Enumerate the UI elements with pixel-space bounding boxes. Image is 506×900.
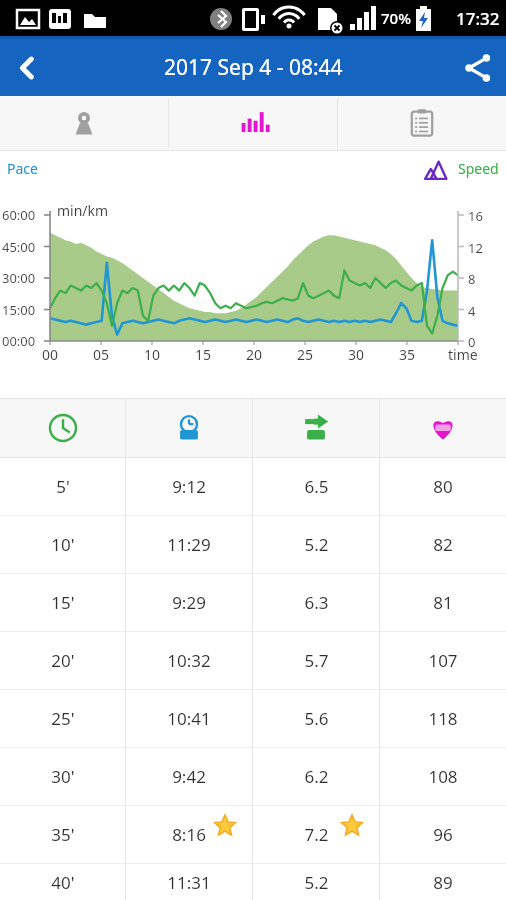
staticText: 30:00: [2, 269, 36, 287]
staticText: 15': [51, 591, 75, 614]
button[interactable]: 15': [0, 574, 506, 631]
staticText: 5': [56, 475, 70, 498]
button[interactable]: 35': [0, 806, 506, 863]
staticText: 11:31: [167, 871, 211, 894]
staticText: 8:16: [172, 823, 206, 846]
staticText: 25': [51, 707, 75, 730]
staticText: min/km: [57, 201, 109, 220]
staticText: 9:12: [172, 475, 206, 498]
staticText: 05: [93, 345, 110, 364]
staticText: 5.2: [304, 871, 329, 894]
staticText: 60:00: [2, 206, 36, 224]
button[interactable]: Duration: [0, 399, 125, 457]
staticText: 80: [433, 475, 453, 498]
staticText: time: [448, 345, 478, 364]
staticText: 70%: [381, 8, 411, 28]
staticText: 30: [348, 345, 365, 364]
button[interactable]: 30': [0, 748, 506, 805]
button[interactable]: Average pace: [126, 399, 252, 457]
staticText: 5.2: [304, 533, 329, 556]
button[interactable]: Map: [0, 96, 168, 150]
staticText: 45:00: [2, 238, 36, 256]
staticText: 16: [468, 207, 483, 225]
button[interactable]: Details: [338, 96, 506, 150]
staticText: 25: [297, 345, 314, 364]
staticText: 0: [468, 333, 476, 351]
staticText: 8: [468, 270, 476, 288]
staticText: 20: [246, 345, 263, 364]
staticText: 15:00: [2, 301, 36, 319]
staticText: 20': [51, 649, 75, 672]
staticText: 30': [51, 765, 75, 788]
staticText: 96: [433, 823, 453, 846]
button[interactable]: 40': [0, 864, 506, 900]
staticText: 10: [144, 345, 161, 364]
staticText: 4: [468, 302, 476, 320]
staticText: 40': [51, 871, 75, 894]
staticText: 12: [468, 239, 483, 257]
button[interactable]: Back: [0, 40, 56, 96]
button[interactable]: 10': [0, 516, 506, 573]
staticText: 107: [428, 649, 458, 672]
staticText: 89: [433, 871, 453, 894]
button[interactable]: Speed: [458, 159, 499, 178]
button[interactable]: Average speed: [253, 399, 379, 457]
staticText: 5.6: [304, 707, 329, 730]
staticText: 6.3: [304, 591, 329, 614]
button[interactable]: Average heart rate: [380, 399, 506, 457]
button[interactable]: Elevation: [421, 155, 451, 185]
staticText: 118: [428, 707, 458, 730]
staticText: 6.5: [304, 475, 329, 498]
button[interactable]: Pace: [7, 159, 38, 178]
staticText: 15: [195, 345, 212, 364]
staticText: 81: [433, 591, 453, 614]
staticText: 00:00: [2, 332, 36, 350]
button[interactable]: 25': [0, 690, 506, 747]
staticText: 00: [42, 345, 59, 364]
staticText: 108: [428, 765, 458, 788]
staticText: 2017 Sep 4 - 08:44: [164, 53, 343, 82]
staticText: 10': [51, 533, 75, 556]
staticText: 82: [433, 533, 453, 556]
staticText: 6.2: [304, 765, 329, 788]
staticText: 5.7: [304, 649, 329, 672]
button[interactable]: 20': [0, 632, 506, 689]
staticText: 10:32: [167, 649, 211, 672]
staticText: 10:41: [167, 707, 211, 730]
staticText: 7.2: [304, 823, 329, 846]
button[interactable]: 5': [0, 458, 506, 515]
button[interactable]: Charts: [169, 96, 337, 150]
staticText: 35': [51, 823, 75, 846]
staticText: 11:29: [167, 533, 211, 556]
staticText: 9:29: [172, 591, 206, 614]
staticText: 35: [399, 345, 416, 364]
staticText: 17:32: [456, 7, 500, 30]
staticText: 9:42: [172, 765, 206, 788]
button[interactable]: Share: [450, 40, 506, 96]
